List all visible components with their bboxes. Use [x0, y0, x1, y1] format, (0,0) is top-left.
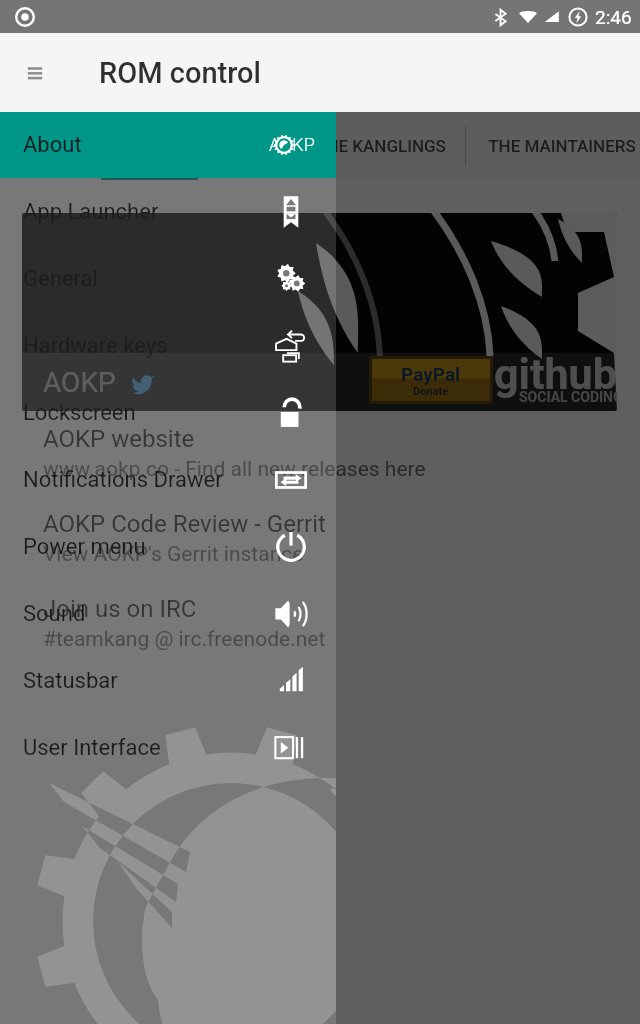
button[interactable]: THE MAINTAINERS — [466, 112, 640, 180]
button[interactable]: Lockscreen — [0, 379, 336, 446]
button[interactable]: PayPal — [22, 213, 617, 411]
button[interactable]: About — [0, 112, 336, 178]
staticText: THE MAINTAINERS — [488, 136, 636, 156]
staticText: 2:46 — [595, 6, 632, 28]
staticText: General — [23, 266, 98, 292]
staticText: THE KANGLINGS — [316, 136, 446, 156]
button[interactable]: THE KANGLINGS — [295, 112, 466, 180]
staticText: AOKP — [43, 366, 116, 399]
staticText: ABOUT — [219, 136, 275, 156]
button[interactable]: App Launcher — [0, 178, 336, 245]
button[interactable]: AOKP website — [0, 411, 640, 496]
button[interactable]: ABOUT — [198, 112, 295, 180]
staticText: ROM control — [99, 56, 261, 90]
button[interactable]: Power menu — [0, 513, 336, 580]
button[interactable]: Join us on IRC — [0, 581, 640, 666]
staticText: View AOKP's Gerrit instance — [43, 542, 304, 567]
staticText: Join us on IRC — [43, 595, 197, 623]
staticText: User Interface — [23, 735, 161, 761]
staticText: Lockscreen — [23, 400, 136, 426]
staticText: App Launcher — [23, 199, 159, 225]
button[interactable]: AOKP Code Review - Gerrit — [0, 496, 640, 581]
staticText: Statusbar — [23, 668, 118, 694]
staticText: Sound — [23, 601, 86, 627]
staticText: github — [494, 349, 617, 399]
button[interactable]: Sound — [0, 580, 336, 647]
staticText: Power menu — [23, 534, 146, 560]
staticText: About — [23, 132, 82, 158]
staticText: www.aokp.co - Find all new releases here — [43, 457, 426, 482]
staticText: SOCIAL CODING — [519, 389, 617, 405]
button[interactable]: Statusbar — [0, 647, 336, 714]
button[interactable]: Open navigation drawer — [13, 51, 57, 95]
button[interactable]: General — [0, 245, 336, 312]
staticText: Notifications Drawer — [23, 467, 223, 493]
staticText: PayPal — [401, 363, 461, 385]
staticText: Donate — [413, 385, 449, 398]
staticText: Hardware keys — [23, 333, 168, 359]
staticText: AOKP website — [43, 425, 195, 453]
staticText: AOKP Code Review - Gerrit — [43, 510, 326, 538]
button[interactable]: Hardware keys — [0, 312, 336, 379]
button[interactable]: Notifications Drawer — [0, 446, 336, 513]
staticText: #teamkang @ irc.freenode.net — [43, 627, 326, 652]
staticText: AOKP — [269, 134, 315, 155]
button[interactable]: User Interface — [0, 714, 336, 781]
